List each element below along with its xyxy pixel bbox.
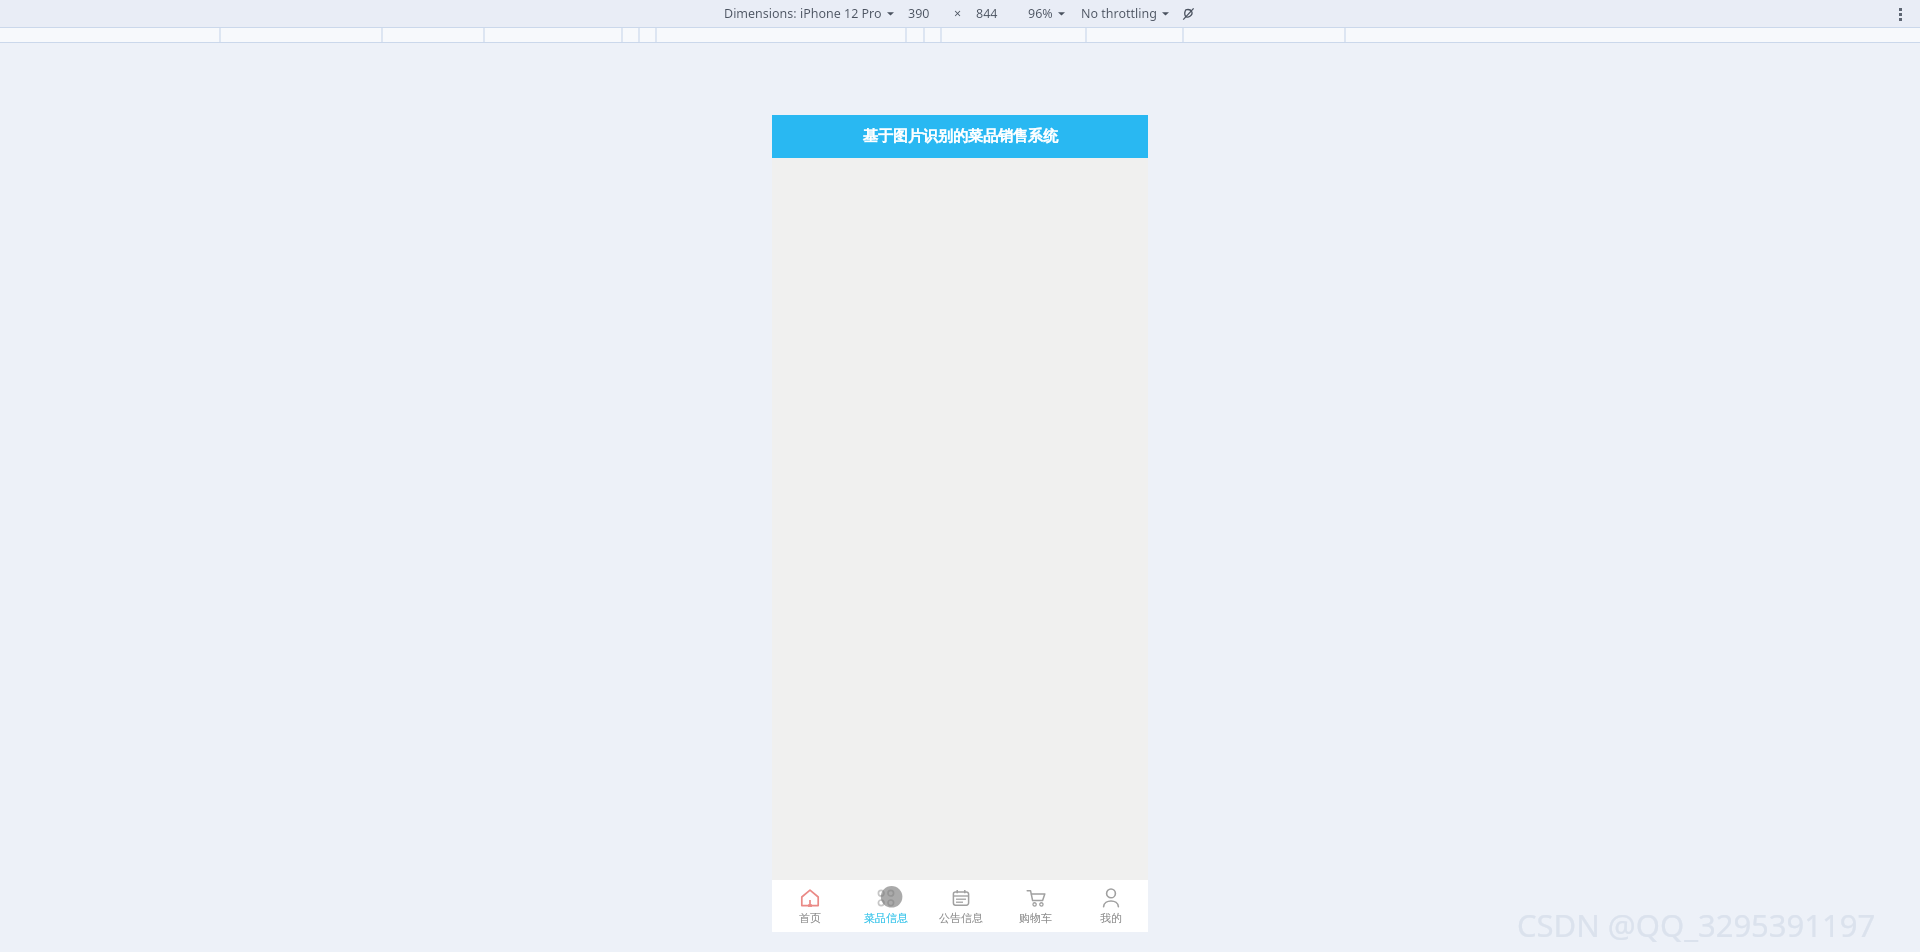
- button[interactable]: 菜品信息: [848, 880, 923, 932]
- button[interactable]: 我的: [1073, 880, 1148, 932]
- button[interactable]: More options: [1893, 6, 1907, 22]
- staticText: CSDN @QQ_3295391197: [1517, 904, 1876, 946]
- staticText: ×: [954, 5, 962, 22]
- staticText: 首页: [799, 911, 821, 925]
- staticText: No throttling: [1081, 5, 1157, 22]
- staticText: 购物车: [1019, 911, 1052, 925]
- staticText: 基于图片识别的菜品销售系统: [863, 127, 1058, 146]
- staticText: 844: [976, 5, 998, 22]
- staticText: 390: [908, 5, 930, 22]
- staticText: Dimensions: iPhone 12 Pro: [724, 5, 882, 22]
- button[interactable]: Toggle device frame: [1180, 6, 1196, 22]
- staticText: 菜品信息: [864, 911, 908, 925]
- staticText: 我的: [1100, 911, 1122, 925]
- button[interactable]: 公告信息: [923, 880, 998, 932]
- button[interactable]: 首页: [772, 880, 848, 932]
- button[interactable]: 购物车: [998, 880, 1073, 932]
- staticText: 96%: [1028, 5, 1053, 22]
- staticText: 公告信息: [939, 911, 983, 925]
